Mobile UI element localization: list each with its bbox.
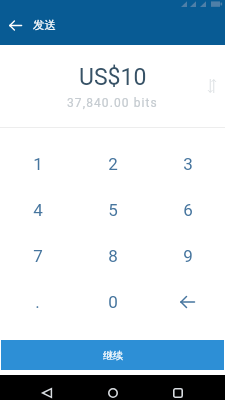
- staticText: US$10: [79, 64, 147, 91]
- staticText: 8: [108, 246, 118, 266]
- staticText: .: [35, 292, 40, 312]
- button[interactable]: 8: [75, 233, 150, 279]
- staticText: 5: [108, 200, 118, 220]
- button[interactable]: Back: [32, 380, 62, 400]
- staticText: 0: [108, 292, 118, 312]
- staticText: 继续: [103, 349, 123, 362]
- staticText: 9: [183, 246, 193, 266]
- button[interactable]: 0: [75, 279, 150, 325]
- button[interactable]: Recents: [163, 380, 193, 400]
- button[interactable]: .: [0, 279, 75, 325]
- button[interactable]: Backspace: [150, 279, 225, 325]
- button[interactable]: 5: [75, 187, 150, 233]
- button[interactable]: 6: [150, 187, 225, 233]
- button[interactable]: Back: [0, 12, 30, 38]
- button[interactable]: 1: [0, 141, 75, 187]
- staticText: 1: [33, 154, 43, 174]
- button[interactable]: 9: [150, 233, 225, 279]
- staticText: 3: [183, 154, 193, 174]
- button[interactable]: Home: [98, 380, 128, 400]
- button[interactable]: 3: [150, 141, 225, 187]
- staticText: 7: [33, 246, 43, 266]
- staticText: 37,840.00 bits: [67, 96, 158, 110]
- staticText: 2: [108, 154, 118, 174]
- staticText: 发送: [33, 18, 56, 32]
- button[interactable]: 4: [0, 187, 75, 233]
- staticText: 6: [183, 200, 193, 220]
- button[interactable]: 7: [0, 233, 75, 279]
- button[interactable]: Swap currency: [202, 76, 222, 96]
- button[interactable]: 2: [75, 141, 150, 187]
- button[interactable]: 继续: [1, 340, 224, 370]
- staticText: 4: [33, 200, 43, 220]
